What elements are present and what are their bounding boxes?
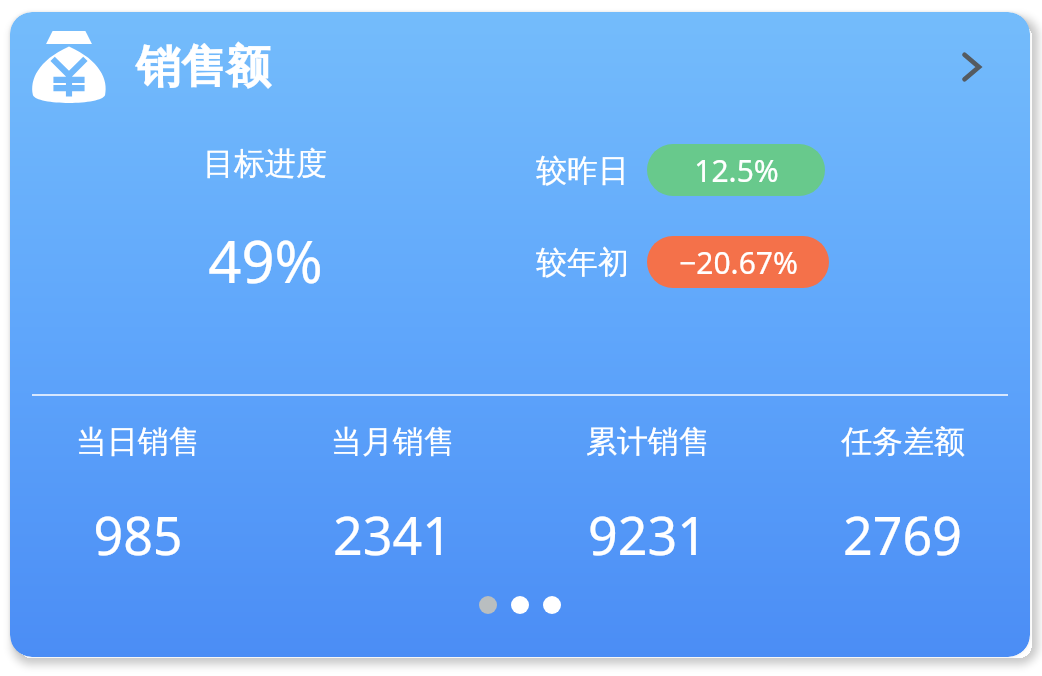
button[interactable]: 当日销售 [10,396,265,596]
staticText: 目标进度 [203,144,327,183]
staticText: 较昨日 [536,151,629,190]
staticText: 当月销售 [331,422,455,461]
staticText: 2769 [843,499,962,570]
staticText: 销售额 [136,39,271,96]
staticText: 12.5% [694,150,779,191]
staticText: 累计销售 [586,422,710,461]
button[interactable]: 12.5% [647,144,825,196]
button[interactable]: −20.67% [647,236,829,288]
staticText: 任务差额 [841,422,965,461]
staticText: 2341 [333,499,452,570]
staticText: 较年初 [536,243,629,282]
staticText: −20.67% [679,242,798,283]
staticText: 当日销售 [76,422,200,461]
button[interactable] [479,596,497,614]
staticText: 49% [208,221,323,300]
button[interactable]: 累计销售 [520,396,775,596]
button[interactable]: 当月销售 [265,396,520,596]
button[interactable] [543,596,561,614]
button[interactable] [511,596,529,614]
button[interactable]: 销售额 [10,12,1030,122]
staticText: 9231 [588,499,707,570]
button[interactable]: 查看详情 [936,32,1006,102]
button[interactable]: 任务差额 [775,396,1030,596]
staticText: 985 [93,499,183,570]
